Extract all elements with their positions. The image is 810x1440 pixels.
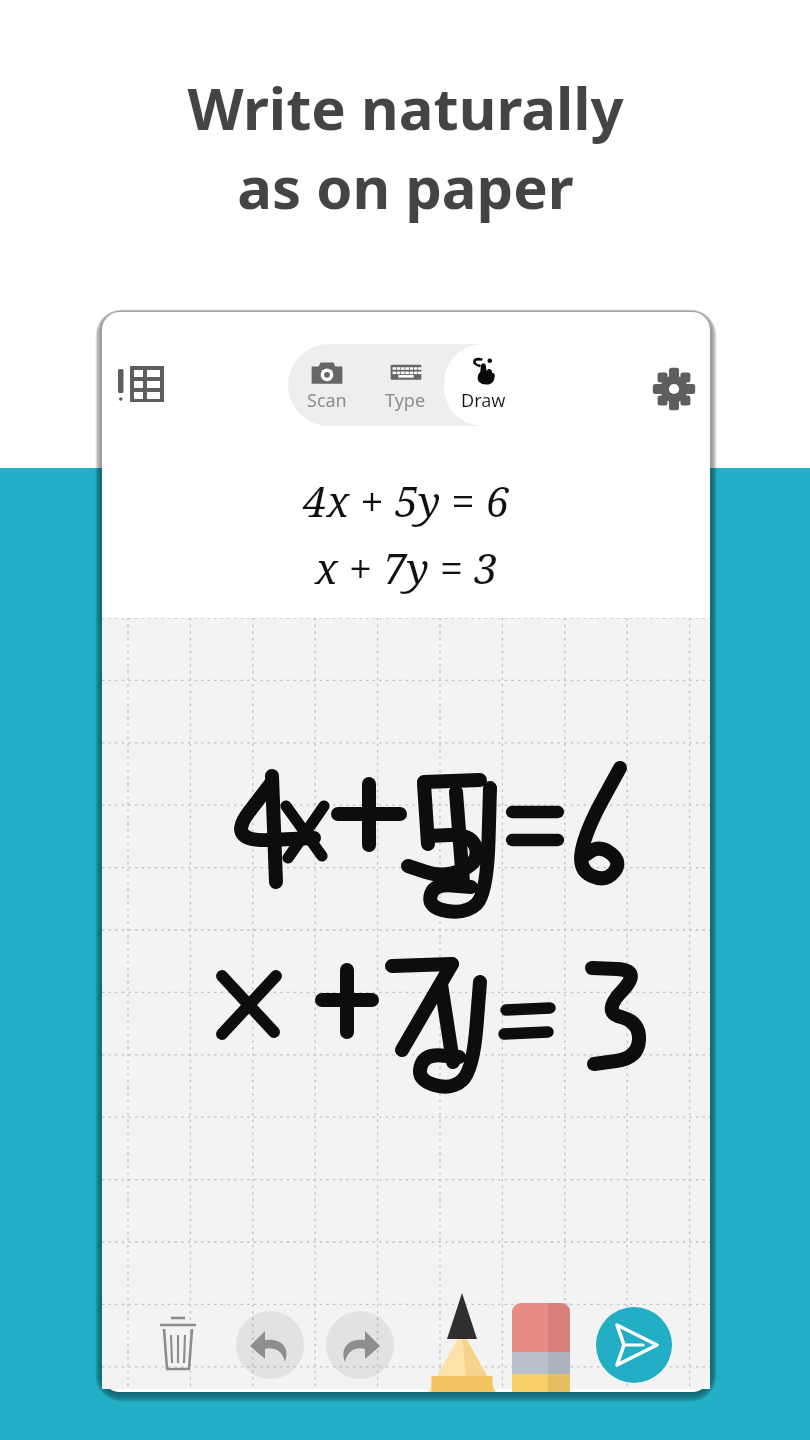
staticText: as on paper: [237, 147, 574, 226]
button[interactable]: Scan: [288, 344, 366, 426]
button[interactable]: Delete: [148, 1312, 210, 1378]
staticText: Write naturally: [187, 68, 624, 147]
staticText: Draw: [461, 388, 506, 413]
button[interactable]: Eraser tool: [512, 1300, 572, 1392]
button[interactable]: Undo: [236, 1310, 304, 1380]
staticText: Scan: [307, 388, 347, 413]
button[interactable]: Type: [366, 344, 444, 426]
button[interactable]: Pencil tool: [426, 1290, 510, 1392]
staticText: Type: [385, 388, 426, 413]
staticText: x + 7y = 3: [315, 539, 498, 596]
button[interactable]: Settings: [646, 358, 704, 416]
button[interactable]: Redo: [326, 1310, 394, 1380]
button[interactable]: Draw: [444, 344, 522, 426]
button[interactable]: Send: [598, 1308, 672, 1382]
staticText: 4x + 5y = 6: [303, 472, 510, 529]
button[interactable]: Notes list: [112, 356, 172, 414]
